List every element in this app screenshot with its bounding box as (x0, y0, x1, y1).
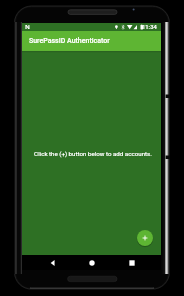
button[interactable]: SurePassID Authenticator (22, 31, 161, 51)
button[interactable]: Recent apps (124, 255, 139, 270)
button[interactable]: Add account (137, 230, 153, 246)
staticText: SurePassID Authenticator (29, 37, 110, 45)
button[interactable]: Back (45, 255, 60, 270)
staticText: Click the (+) button below to add accoun… (25, 150, 161, 157)
staticText: 11:34 (142, 24, 157, 31)
button[interactable]: Home (84, 255, 99, 270)
